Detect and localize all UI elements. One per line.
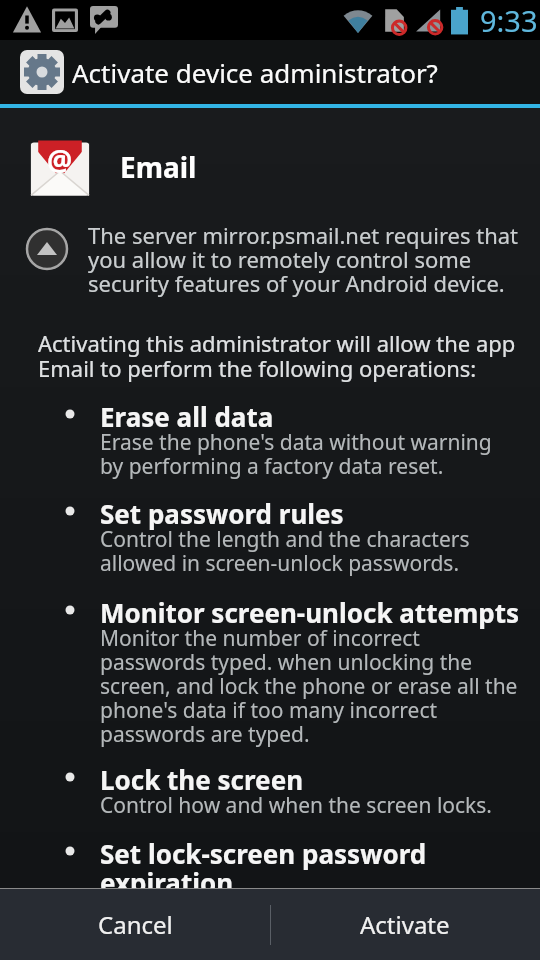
staticText: Activate device administrator?	[72, 55, 438, 90]
staticText: Control how and when the screen locks.	[100, 791, 492, 820]
staticText: Set password rules	[100, 496, 344, 531]
staticText: Activating this administrator will allow…	[38, 328, 516, 383]
staticText: Set lock-screen password expiration	[100, 836, 427, 888]
staticText: Control the length and the characters al…	[100, 525, 470, 578]
staticText: Monitor the number of incorrect password…	[100, 624, 518, 749]
button[interactable]: Cancel	[0, 889, 270, 960]
staticText: @	[47, 141, 73, 179]
staticText: Email	[120, 148, 197, 186]
staticText: Activate	[360, 908, 450, 941]
staticText: Cancel	[98, 908, 173, 941]
staticText: The server mirror.psmail.net requires th…	[88, 220, 519, 298]
staticText: Lock the screen	[100, 762, 304, 797]
staticText: 9:33	[480, 1, 538, 40]
staticText: Erase all data	[100, 399, 274, 434]
staticText: Monitor screen-unlock attempts	[100, 595, 520, 630]
button[interactable]	[25, 227, 69, 271]
button[interactable]: Activate	[270, 889, 540, 960]
staticText: Erase the phone's data without warning b…	[100, 428, 492, 481]
